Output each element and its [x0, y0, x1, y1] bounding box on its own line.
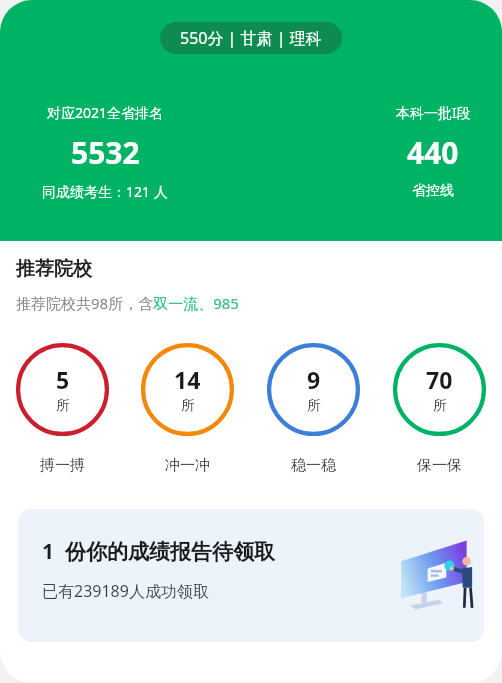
staticText: 推荐院校共98所，含双一流、985 — [16, 293, 239, 313]
staticText: 70 — [426, 364, 453, 395]
staticText: 14 — [174, 364, 201, 395]
staticText: 搏一搏 — [40, 456, 85, 475]
staticText: 本科一批I段 — [396, 103, 471, 122]
staticText: 440 — [407, 132, 459, 173]
button[interactable]: 5 — [0, 343, 125, 475]
staticText: 5532 — [71, 132, 140, 173]
staticText: 5 — [56, 364, 70, 395]
staticText: 所 — [181, 397, 195, 415]
button[interactable]: 14 — [125, 343, 250, 475]
other: 成绩报告插图 — [398, 539, 476, 613]
staticText: 1 份你的成绩报告待领取 — [42, 537, 275, 566]
staticText: 稳一稳 — [291, 456, 336, 475]
staticText: 推荐院校 — [16, 257, 92, 281]
button[interactable]: 9 — [250, 343, 376, 475]
staticText: 550分 | 甘肃 | 理科 — [180, 27, 322, 49]
staticText: 9 — [307, 364, 321, 395]
staticText: 省控线 — [412, 182, 454, 200]
button[interactable]: 70 — [376, 343, 502, 475]
staticText: 同成绩考生：121 人 — [42, 182, 168, 201]
staticText: 已有239189人成功领取 — [42, 580, 209, 602]
button[interactable]: 550分 | 甘肃 | 理科 — [160, 22, 342, 54]
staticText: 保一保 — [417, 456, 462, 475]
staticText: 所 — [307, 397, 321, 415]
staticText: 对应2021全省排名 — [47, 103, 164, 122]
staticText: 所 — [433, 397, 447, 415]
button[interactable]: 1 份你的成绩报告待领取 — [18, 509, 484, 642]
staticText: 冲一冲 — [165, 456, 210, 475]
staticText: 所 — [56, 397, 70, 415]
